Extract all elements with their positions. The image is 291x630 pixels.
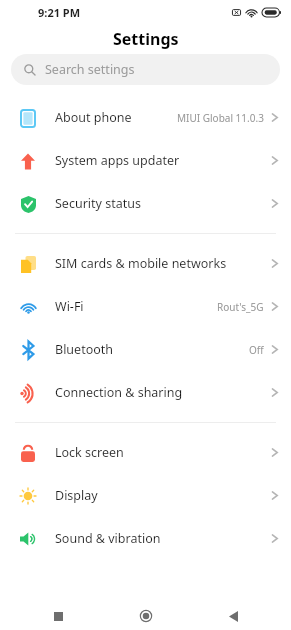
staticText: Display xyxy=(55,487,271,504)
button[interactable]: Display xyxy=(0,474,291,517)
staticText: Sound & vibration xyxy=(55,530,271,547)
button[interactable]: Recents xyxy=(28,602,88,630)
button[interactable]: Sound & vibration xyxy=(0,517,291,560)
button[interactable]: Security status xyxy=(0,182,291,225)
staticText: Rout's_5G xyxy=(217,300,264,314)
staticText: Settings xyxy=(113,28,179,50)
button[interactable]: Lock screen xyxy=(0,431,291,474)
staticText: Off xyxy=(249,343,264,357)
staticText: Bluetooth xyxy=(55,341,249,358)
staticText: Security status xyxy=(55,195,271,212)
staticText: 9:21 PM xyxy=(38,5,81,20)
button[interactable]: Bluetooth xyxy=(0,328,291,371)
button[interactable]: Back xyxy=(203,602,263,630)
staticText: MIUI Global 11.0.3 xyxy=(177,111,264,125)
staticText: Wi-Fi xyxy=(55,298,217,315)
button[interactable]: About phone xyxy=(0,96,291,139)
staticText: Connection & sharing xyxy=(55,384,271,401)
button[interactable]: Wi-Fi xyxy=(0,285,291,328)
button[interactable]: System apps updater xyxy=(0,139,291,182)
button[interactable]: SIM cards & mobile networks xyxy=(0,242,291,285)
button[interactable]: Connection & sharing xyxy=(0,371,291,414)
staticText: About phone xyxy=(55,109,177,126)
staticText: System apps updater xyxy=(55,152,271,169)
staticText: Search settings xyxy=(45,61,135,78)
staticText: SIM cards & mobile networks xyxy=(55,255,271,272)
button[interactable]: Search settings xyxy=(11,54,280,85)
staticText: Lock screen xyxy=(55,444,271,461)
button[interactable]: Home xyxy=(116,602,176,630)
